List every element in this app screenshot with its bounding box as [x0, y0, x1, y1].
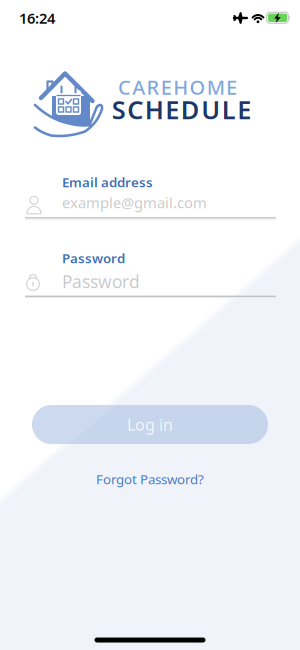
staticText: C: [127, 93, 143, 126]
staticText: Forgot Password?: [96, 470, 204, 488]
staticText: M: [207, 74, 225, 100]
staticText: R: [147, 74, 160, 100]
staticText: U: [201, 93, 220, 126]
staticText: example@gmail.com: [62, 193, 207, 212]
staticText: O: [189, 74, 205, 100]
staticText: E: [237, 93, 251, 126]
staticText: Log in: [127, 414, 173, 435]
textField[interactable]: example@gmail.com: [25, 192, 276, 219]
staticText: E: [161, 74, 172, 100]
staticText: Email address: [62, 173, 153, 191]
staticText: H: [145, 93, 164, 126]
staticText: 16:24: [19, 8, 55, 28]
button[interactable]: Forgot Password?: [96, 470, 204, 488]
staticText: S: [112, 93, 126, 126]
staticText: E: [165, 93, 179, 126]
staticText: Password: [62, 249, 125, 267]
staticText: D: [181, 93, 200, 126]
staticText: L: [222, 93, 236, 126]
staticText: A: [132, 74, 145, 100]
button[interactable]: Log in: [32, 405, 268, 444]
staticText: E: [226, 74, 237, 100]
staticText: Password: [62, 270, 140, 293]
textField[interactable]: Password: [25, 268, 276, 297]
staticText: C: [118, 74, 131, 100]
staticText: H: [173, 74, 188, 100]
